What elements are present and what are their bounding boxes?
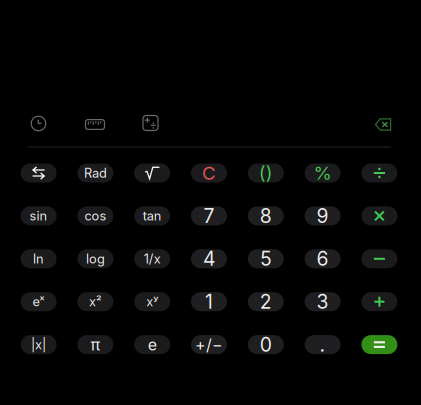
button[interactable]: |x| xyxy=(21,335,57,354)
staticText: e xyxy=(148,335,157,354)
button[interactable]: 6 xyxy=(305,249,341,268)
staticText: |x| xyxy=(31,337,46,352)
button[interactable]: Calculator Mode xyxy=(133,108,167,138)
button[interactable]: % xyxy=(305,163,341,182)
button[interactable]: . xyxy=(305,335,341,354)
staticText: 1/x xyxy=(144,251,161,267)
staticText: 0 xyxy=(260,333,272,356)
button[interactable]: π xyxy=(77,335,113,354)
staticText: cos xyxy=(84,208,106,224)
staticText: 6 xyxy=(317,247,329,270)
button[interactable]: Add xyxy=(361,292,397,311)
button[interactable]: 1/x xyxy=(134,249,170,268)
staticText: 9 xyxy=(317,204,329,228)
button[interactable]: Divide xyxy=(361,163,397,182)
staticText: tan xyxy=(143,208,162,224)
button[interactable]: 1 xyxy=(191,292,227,311)
staticText: eˣ xyxy=(33,294,45,309)
staticText: 7 xyxy=(203,204,214,228)
button[interactable]: ln xyxy=(21,249,57,268)
button[interactable]: 8 xyxy=(248,206,284,225)
button[interactable]: sin xyxy=(21,206,57,225)
staticText: +/− xyxy=(195,335,223,354)
staticText: Rad xyxy=(84,165,107,181)
button[interactable]: +/− xyxy=(191,335,227,354)
button[interactable]: Square root xyxy=(134,163,170,182)
button[interactable]: eˣ xyxy=(21,292,57,311)
staticText: sin xyxy=(30,208,48,224)
staticText: 4 xyxy=(203,247,215,270)
staticText: 8 xyxy=(260,204,272,228)
button[interactable]: cos xyxy=(77,206,113,225)
button[interactable]: 2 xyxy=(248,292,284,311)
staticText: ln xyxy=(33,251,44,267)
button[interactable]: C xyxy=(191,163,227,182)
staticText: 3 xyxy=(317,290,329,313)
staticText: xʸ xyxy=(146,294,158,309)
button[interactable]: Delete xyxy=(366,109,400,139)
staticText: . xyxy=(320,333,326,356)
staticText: () xyxy=(259,162,273,184)
staticText: 2 xyxy=(260,290,272,313)
button[interactable]: tan xyxy=(134,206,170,225)
button[interactable]: Subtract xyxy=(361,249,397,268)
staticText: C xyxy=(202,162,216,184)
button[interactable]: 7 xyxy=(191,206,227,225)
button[interactable]: 0 xyxy=(248,335,284,354)
button[interactable]: Rad xyxy=(77,163,113,182)
button[interactable]: e xyxy=(134,335,170,354)
button[interactable]: x² xyxy=(77,292,113,311)
button[interactable]: log xyxy=(77,249,113,268)
button[interactable]: Swap xyxy=(21,163,57,182)
staticText: π xyxy=(90,335,100,354)
staticText: log xyxy=(86,251,105,267)
staticText: 5 xyxy=(260,247,271,270)
staticText: x² xyxy=(89,294,102,309)
button[interactable]: 3 xyxy=(305,292,341,311)
button[interactable]: 5 xyxy=(248,249,284,268)
button[interactable]: Multiply xyxy=(361,206,397,225)
staticText: % xyxy=(314,162,332,184)
button[interactable]: Unit Converter xyxy=(78,109,112,139)
button[interactable]: 9 xyxy=(305,206,341,225)
button[interactable]: () xyxy=(248,163,284,182)
button[interactable]: History xyxy=(21,108,55,138)
staticText: 1 xyxy=(205,290,213,313)
button[interactable]: 4 xyxy=(191,249,227,268)
button[interactable]: Equals xyxy=(361,335,397,354)
button[interactable]: xʸ xyxy=(134,292,170,311)
